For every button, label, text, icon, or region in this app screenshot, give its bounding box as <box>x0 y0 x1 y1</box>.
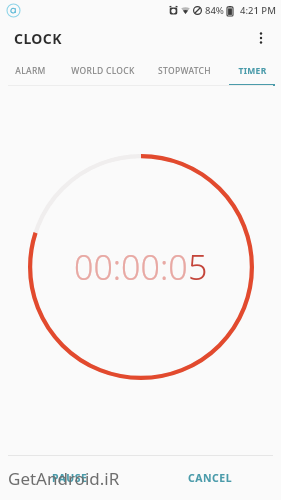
button[interactable]: TIMER <box>223 56 281 86</box>
button[interactable]: WORLD CLOCK <box>60 56 146 86</box>
button[interactable]: ALARM <box>0 56 60 86</box>
staticText: 4:21 PM <box>240 4 276 17</box>
staticText: 84% <box>205 4 224 17</box>
button[interactable]: STOPWATCH <box>146 56 223 86</box>
button[interactable]: More options <box>245 22 277 54</box>
staticText: 5 <box>188 244 208 290</box>
staticText: TIMER <box>238 65 267 77</box>
button[interactable]: PAUSE <box>0 456 140 500</box>
staticText: WORLD CLOCK <box>71 65 135 77</box>
staticText: ALARM <box>15 65 46 77</box>
staticText: 00:00:0 <box>74 244 188 290</box>
staticText: STOPWATCH <box>158 65 211 77</box>
staticText: CLOCK <box>14 29 62 48</box>
button[interactable]: CANCEL <box>140 456 281 500</box>
staticText: CANCEL <box>188 471 233 485</box>
staticText: PAUSE <box>52 471 88 485</box>
staticText: GetAndroid.iR <box>8 467 120 490</box>
